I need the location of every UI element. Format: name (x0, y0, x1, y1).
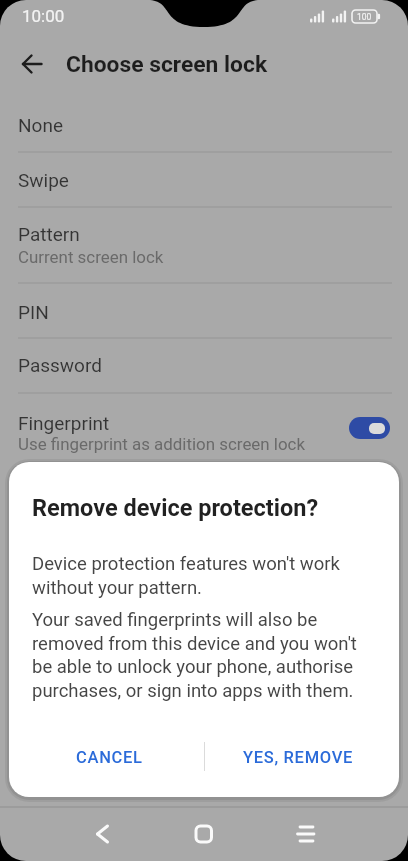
button[interactable]: Fingerprint (0, 394, 408, 462)
button[interactable]: CANCEL (56, 739, 162, 776)
staticText: Remove device protection? (32, 494, 319, 522)
staticText: Fingerprint (18, 412, 110, 434)
staticText: Use fingerprint as addition screen lock (18, 434, 305, 454)
staticText: Swipe (18, 169, 69, 191)
staticText: Pattern (18, 223, 80, 245)
button[interactable]: Password (0, 339, 408, 393)
staticText: Device protection features won't work (32, 553, 340, 575)
button[interactable]: None (0, 100, 408, 152)
button[interactable] (170, 810, 238, 858)
button[interactable]: YES, REMOVE (229, 739, 368, 776)
staticText: Current screen lock (18, 247, 164, 267)
button[interactable] (349, 417, 390, 439)
staticText: YES, REMOVE (243, 748, 354, 767)
staticText: None (18, 114, 63, 136)
staticText: 100 (357, 12, 372, 22)
button[interactable]: Swipe (0, 153, 408, 207)
staticText: Choose screen lock (66, 51, 268, 78)
button[interactable]: Pattern (0, 208, 408, 283)
staticText: PIN (18, 301, 49, 323)
button[interactable] (14, 46, 50, 82)
button[interactable] (68, 810, 136, 858)
staticText: removed from this device and you won't (32, 633, 357, 655)
staticText: 10:00 (22, 6, 65, 26)
staticText: without your pattern. (32, 577, 202, 599)
button[interactable] (272, 810, 340, 858)
staticText: be able to unlock your phone, authorise (32, 656, 354, 678)
staticText: Password (18, 354, 102, 376)
staticText: CANCEL (76, 748, 143, 767)
staticText: Your saved fingerprints will also be (32, 609, 318, 631)
staticText: purchases, or sign into apps with them. (32, 680, 354, 702)
button[interactable]: PIN (0, 284, 408, 338)
